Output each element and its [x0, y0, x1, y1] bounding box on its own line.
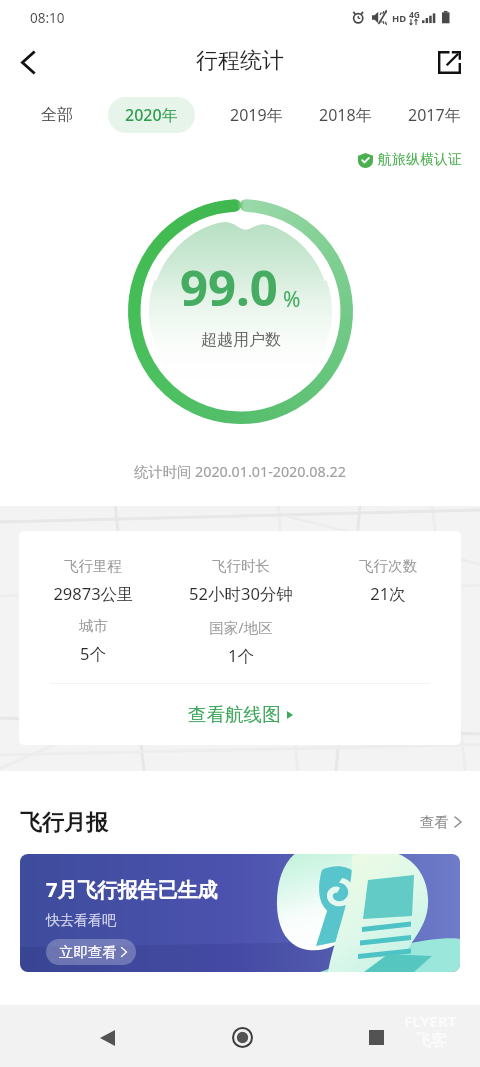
staticText: HD	[392, 12, 407, 25]
staticText: 08:10	[30, 9, 65, 27]
staticText: 2018年	[319, 104, 372, 126]
staticText: 国家/地区	[209, 617, 273, 637]
staticText: 立即查看	[59, 943, 117, 961]
staticText: 2019年	[230, 104, 283, 126]
button[interactable]: 立即查看	[46, 939, 136, 965]
staticText: 飞行里程	[64, 557, 122, 575]
staticText: 超越用户数	[201, 330, 281, 350]
staticText: 快去看看吧	[46, 912, 116, 930]
staticText: 29873公里	[53, 582, 134, 605]
button[interactable]: 2018年	[318, 97, 373, 133]
staticText: 统计时间 2020.01.01-2020.08.22	[0, 462, 480, 482]
staticText: 行程统计	[196, 47, 284, 75]
staticText: 飞客	[415, 1031, 447, 1051]
button[interactable]: 查看航线图	[19, 684, 461, 745]
staticText: 飞行时长	[212, 557, 270, 575]
staticText: 52小时30分钟	[189, 582, 293, 605]
staticText: FLYERT	[404, 1011, 457, 1031]
button[interactable]: 2017年	[407, 97, 462, 133]
button[interactable]: Recents	[355, 1016, 398, 1059]
staticText: 飞行次数	[359, 557, 417, 575]
staticText: %	[283, 285, 301, 314]
staticText: 2020年	[125, 104, 178, 126]
staticText: 航旅纵横认证	[378, 151, 462, 169]
staticText: 21次	[370, 582, 406, 605]
staticText: 99.0	[180, 254, 278, 321]
button[interactable]: Share	[429, 42, 469, 82]
button[interactable]: 2020年	[108, 97, 195, 133]
staticText: 1个	[228, 644, 254, 667]
staticText: 2017年	[408, 104, 461, 126]
button[interactable]: 全部	[40, 98, 74, 132]
staticText: 查看航线图	[188, 703, 281, 726]
button[interactable]: 7月飞行报告已生成	[20, 854, 460, 972]
staticText: 飞行月报	[20, 809, 108, 837]
button[interactable]: Back	[6, 40, 50, 84]
button[interactable]: Home	[221, 1016, 264, 1059]
staticText: 7月飞行报告已生成	[46, 876, 218, 903]
button[interactable]: 2019年	[229, 97, 284, 133]
button[interactable]: 查看	[420, 813, 462, 831]
staticText: 4G	[409, 9, 421, 21]
staticText: 全部	[41, 105, 73, 125]
staticText: 查看	[420, 813, 449, 831]
staticText: 城市	[79, 617, 108, 635]
button[interactable]: Back	[86, 1016, 129, 1059]
staticText: 5个	[80, 642, 106, 665]
